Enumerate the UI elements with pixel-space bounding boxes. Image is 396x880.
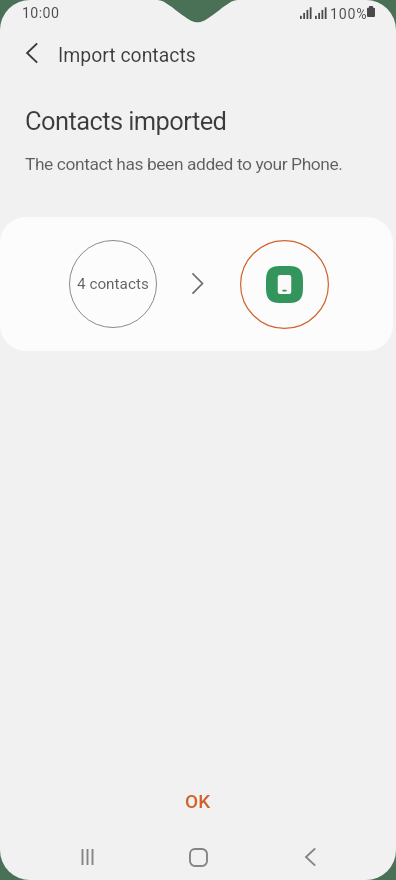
staticText: 100% <box>330 6 368 23</box>
button[interactable]: Home <box>143 834 254 880</box>
button[interactable]: OK <box>0 779 396 823</box>
button[interactable]: Back <box>7 29 55 77</box>
staticText: Import contacts <box>58 44 196 67</box>
staticText: 4 contacts <box>77 275 149 293</box>
staticText: The contact has been added to your Phone… <box>25 154 343 174</box>
staticText: Contacts imported <box>25 106 227 136</box>
staticText: 10:00 <box>22 5 60 22</box>
staticText: OK <box>185 790 211 812</box>
button[interactable]: Back <box>254 834 365 880</box>
button[interactable]: Recent apps <box>32 834 143 880</box>
